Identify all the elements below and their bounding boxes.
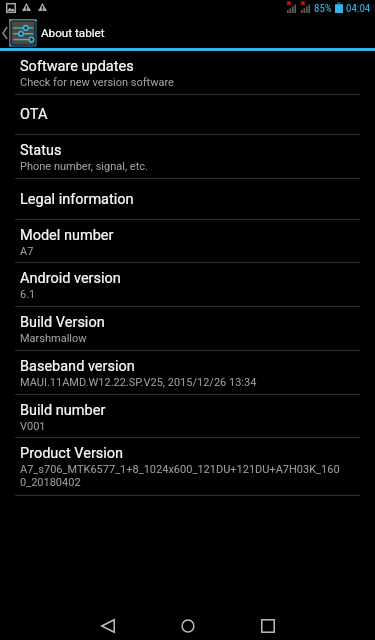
staticText: A7 xyxy=(20,245,34,258)
staticText: V001 xyxy=(20,420,46,433)
staticText: Build Version xyxy=(20,314,105,331)
staticText: Software updates xyxy=(20,58,134,75)
staticText: 6.1 xyxy=(20,288,36,301)
staticText: A7_s706_MTK6577_1+8_1024x600_121DU+121DU… xyxy=(20,463,344,489)
button[interactable]: Build Version xyxy=(0,307,375,350)
staticText: Product Version xyxy=(20,445,124,462)
staticText: About tablet xyxy=(41,26,105,40)
button[interactable]: Product Version xyxy=(0,438,375,495)
button[interactable]: Android version xyxy=(0,263,375,306)
staticText: 85% xyxy=(314,2,332,15)
button[interactable]: Recent apps xyxy=(238,612,298,640)
button[interactable]: Model number xyxy=(0,220,375,262)
button[interactable]: Navigate up, About tablet xyxy=(0,17,110,48)
button[interactable]: Build number xyxy=(0,395,375,437)
button[interactable]: Status xyxy=(0,135,375,178)
button[interactable]: Home xyxy=(158,612,218,640)
staticText: Check for new version software xyxy=(20,76,174,89)
button[interactable]: OTA xyxy=(0,95,375,134)
staticText: Android version xyxy=(20,270,121,287)
button[interactable]: Back xyxy=(78,612,138,640)
staticText: Baseband version xyxy=(20,358,135,375)
staticText: Build number xyxy=(20,402,106,419)
staticText: Marshmallow xyxy=(20,332,87,345)
staticText: Phone number, signal, etc. xyxy=(20,160,148,173)
staticText: Model number xyxy=(20,227,114,244)
button[interactable]: Baseband version xyxy=(0,351,375,394)
staticText: Status xyxy=(20,142,62,159)
button[interactable]: Software updates xyxy=(0,51,375,94)
button[interactable]: Legal information xyxy=(0,179,375,219)
staticText: Legal information xyxy=(20,191,134,208)
staticText: MAUI.11AMD.W12.22.SP.V25, 2015/12/26 13:… xyxy=(20,376,257,389)
staticText: OTA xyxy=(20,106,48,123)
staticText: 04:04 xyxy=(346,2,371,15)
